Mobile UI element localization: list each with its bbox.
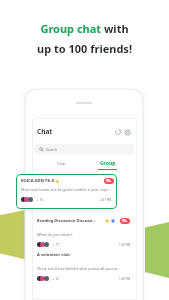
staticText: + 32 [53, 277, 59, 281]
button[interactable]: Chat [38, 160, 84, 174]
staticText: Group chat with up to 100 friends! [37, 21, 132, 56]
staticText: Search [46, 147, 58, 152]
staticText: A volunteer club [37, 252, 70, 257]
staticText: KOICA-KDIS Ph.D. [21, 178, 56, 183]
staticText: 1:40 PM [119, 243, 131, 247]
button[interactable]: KOICA-KDIS Ph.D. [16, 174, 117, 209]
staticText: Think not those faithful who praise all … [37, 266, 121, 271]
staticText: Reading Discussion Discussi... [37, 218, 96, 223]
staticText: 99+ [122, 219, 128, 223]
button[interactable]: A volunteer club [32, 245, 137, 279]
button[interactable]: Settings [122, 127, 132, 137]
staticText: 2:21 PM [100, 198, 112, 202]
staticText: + 17 [53, 243, 59, 247]
button[interactable]: Search [35, 144, 134, 154]
staticText: Chat [37, 127, 53, 136]
staticText: Group [100, 160, 116, 167]
button[interactable]: Reading Discussion Discussi... [32, 211, 137, 245]
staticText: 1:20 PM [119, 277, 131, 281]
button[interactable]: Sync contacts [113, 127, 123, 137]
staticText: Most new books are forgotten within a ye… [21, 187, 112, 192]
staticText: Chat [57, 161, 66, 166]
staticText: + 16 [37, 198, 43, 202]
staticText: 99+ [106, 179, 112, 183]
button[interactable]: Group [84, 160, 131, 174]
staticText: What do you mean? [37, 232, 73, 237]
